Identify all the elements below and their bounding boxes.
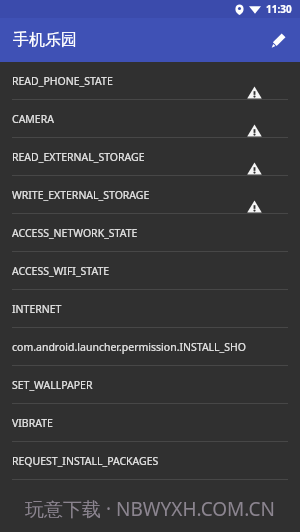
button[interactable]: READ_EXTERNAL_STORAGE — [0, 138, 300, 176]
button[interactable]: CAMERA — [0, 100, 300, 138]
staticText: ACCESS_WIFI_STATE — [12, 264, 110, 278]
staticText: VIBRATE — [12, 416, 53, 430]
button[interactable]: Edit — [256, 18, 300, 62]
button[interactable]: READ_PHONE_STATE — [0, 62, 300, 100]
staticText: READ_PHONE_STATE — [12, 74, 113, 88]
button[interactable]: INTERNET — [0, 290, 300, 328]
staticText: 手机乐园 — [13, 30, 77, 50]
staticText: REQUEST_INSTALL_PACKAGES — [12, 454, 159, 468]
staticText: INTERNET — [12, 302, 62, 316]
button[interactable]: ACCESS_WIFI_STATE — [0, 252, 300, 290]
button[interactable]: REQUEST_INSTALL_PACKAGES — [0, 442, 300, 480]
staticText: 11:30 — [266, 2, 292, 16]
staticText: com.android.launcher.permission.INSTALL_… — [12, 340, 252, 354]
staticText: SET_WALLPAPER — [12, 378, 93, 392]
button[interactable]: WRITE_EXTERNAL_STORAGE — [0, 176, 300, 214]
button[interactable]: SET_WALLPAPER — [0, 366, 300, 404]
staticText: WRITE_EXTERNAL_STORAGE — [12, 188, 150, 202]
button[interactable]: com.android.launcher.permission.INSTALL_… — [0, 328, 300, 366]
button[interactable]: VIBRATE — [0, 404, 300, 442]
staticText: CAMERA — [12, 112, 54, 126]
button[interactable]: ACCESS_NETWORK_STATE — [0, 214, 300, 252]
staticText: ACCESS_NETWORK_STATE — [12, 226, 138, 240]
staticText: 玩意下载 · NBWYXH.COM.CN — [25, 496, 275, 522]
staticText: READ_EXTERNAL_STORAGE — [12, 150, 145, 164]
